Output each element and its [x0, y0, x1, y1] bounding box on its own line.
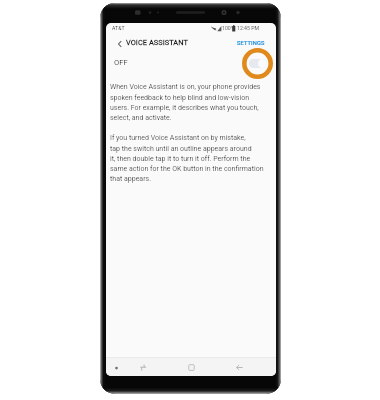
button[interactable]: Hide navigation bar	[107, 358, 125, 376]
staticText: If you turned Voice Assistant on by mist…	[110, 134, 264, 183]
staticText: VOICE ASSISTANT	[126, 38, 188, 47]
button[interactable]: Back	[230, 358, 248, 376]
button[interactable]: Recent apps	[134, 358, 152, 376]
staticText: 12:45 PM	[237, 25, 260, 31]
button[interactable]: Navigate up	[110, 35, 130, 52]
staticText: OFF	[114, 58, 128, 67]
staticText: When Voice Assistant is on, your phone p…	[110, 83, 261, 122]
button[interactable]: Home	[182, 358, 200, 376]
staticText: SETTINGS	[237, 40, 265, 47]
staticText: AT&T	[112, 25, 125, 31]
staticText: 100%	[222, 25, 235, 31]
button[interactable]: SETTINGS	[236, 35, 266, 52]
button[interactable]: Voice Assistant on off switch	[242, 48, 273, 79]
